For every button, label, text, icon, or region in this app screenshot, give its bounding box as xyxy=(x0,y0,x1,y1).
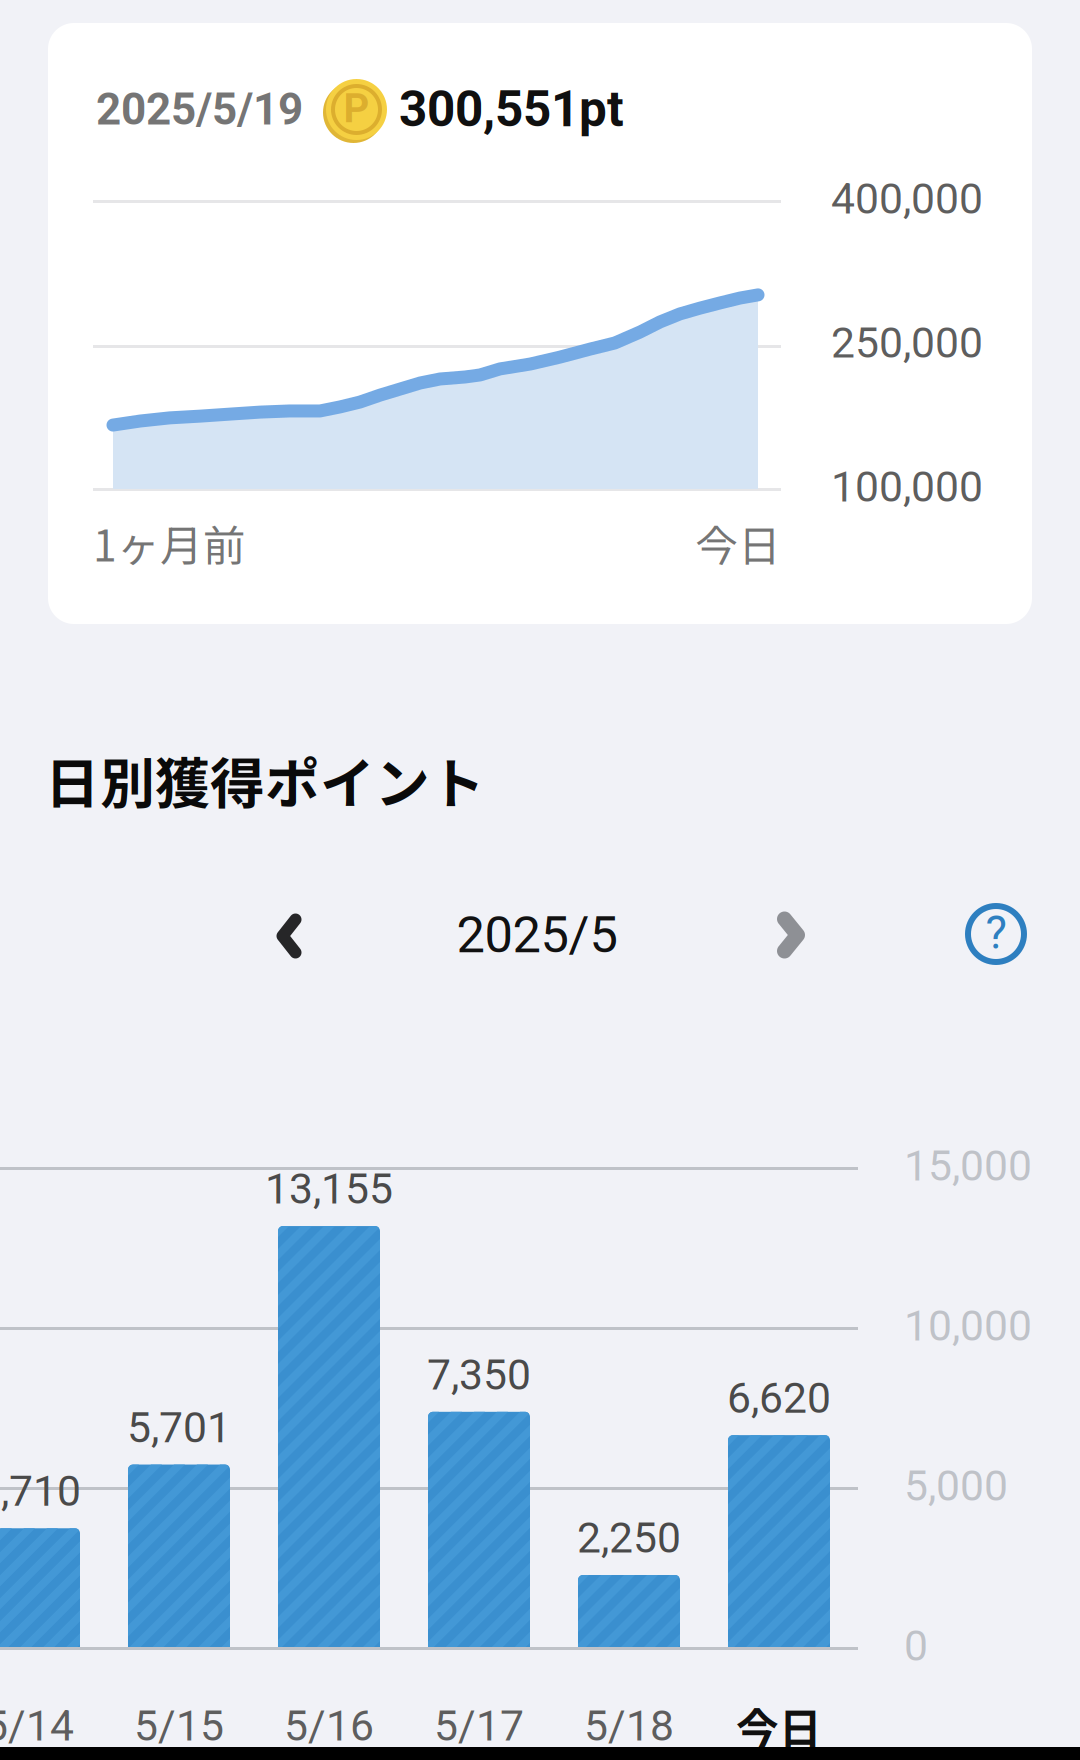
button[interactable]: Help xyxy=(956,894,1036,974)
staticText: 5,000 xyxy=(904,1461,1008,1511)
staticText: 10,000 xyxy=(904,1301,1032,1351)
staticText: 3,710 xyxy=(0,1466,81,1516)
staticText: 13,155 xyxy=(265,1164,393,1214)
staticText: 今日 xyxy=(736,1695,822,1757)
staticText: 5/18 xyxy=(584,1701,674,1751)
staticText: 7,350 xyxy=(427,1350,531,1400)
staticText: 6,620 xyxy=(727,1373,831,1423)
staticText: 15,000 xyxy=(904,1141,1032,1191)
staticText: 5/16 xyxy=(284,1701,374,1751)
staticText: 0 xyxy=(904,1621,928,1671)
staticText: 300,551pt xyxy=(399,81,624,138)
button[interactable]: Previous month xyxy=(243,890,335,982)
staticText: 5/15 xyxy=(134,1701,224,1751)
staticText: P xyxy=(343,85,369,132)
staticText: 5/17 xyxy=(434,1701,524,1751)
staticText: 今日 xyxy=(695,512,781,574)
staticText: ? xyxy=(985,906,1006,959)
button[interactable]: Next month xyxy=(745,889,837,981)
staticText: 1ヶ月前 xyxy=(93,512,246,574)
staticText: 2025/5/19 xyxy=(96,84,303,135)
staticText: 400,000 xyxy=(831,174,983,224)
staticText: 5/14 xyxy=(0,1701,74,1751)
staticText: 250,000 xyxy=(831,318,983,368)
staticText: 5,701 xyxy=(127,1403,231,1453)
staticText: 100,000 xyxy=(831,462,983,512)
staticText: 日別獲得ポイント xyxy=(45,740,485,819)
staticText: 2,250 xyxy=(577,1513,681,1563)
staticText: 2025/5 xyxy=(456,905,617,965)
